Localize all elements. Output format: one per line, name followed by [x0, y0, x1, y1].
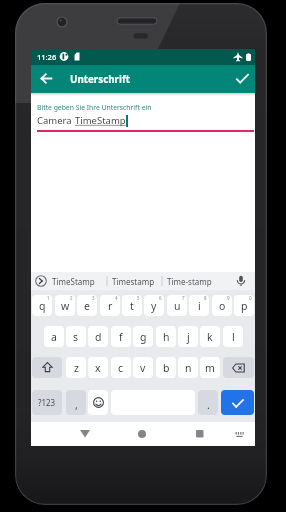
button[interactable]: c: [111, 357, 131, 378]
staticText: n: [185, 361, 192, 375]
staticText: 11:26: [37, 52, 57, 62]
staticText: z: [74, 361, 79, 375]
button[interactable]: o: [212, 295, 232, 316]
button[interactable]: j: [178, 326, 198, 347]
button[interactable]: g: [133, 326, 153, 347]
staticText: w: [61, 299, 70, 313]
staticText: 0: [249, 295, 252, 301]
staticText: c: [118, 361, 124, 375]
staticText: m: [205, 361, 215, 375]
button[interactable]: .: [198, 390, 218, 415]
button[interactable]: d: [88, 326, 108, 347]
staticText: s: [73, 330, 79, 344]
button[interactable]: [223, 357, 254, 378]
button[interactable]: q: [32, 295, 52, 316]
button[interactable]: [88, 390, 108, 415]
staticText: j: [187, 330, 190, 344]
staticText: Camera: [37, 114, 75, 127]
button[interactable]: [35, 67, 58, 90]
button[interactable]: v: [133, 357, 153, 378]
button[interactable]: TimeStamp: [49, 272, 107, 290]
staticText: t: [130, 299, 134, 313]
staticText: 6: [159, 295, 162, 301]
staticText: 4: [115, 295, 118, 301]
staticText: a: [51, 330, 57, 344]
staticText: Unterschrift: [70, 73, 130, 86]
staticText: g: [140, 330, 147, 344]
button[interactable]: ,: [66, 390, 86, 415]
staticText: r: [108, 299, 113, 313]
staticText: 5: [137, 295, 140, 301]
button[interactable]: s: [66, 326, 86, 347]
button[interactable]: [75, 424, 95, 444]
staticText: p: [241, 299, 248, 313]
staticText: 1: [47, 295, 50, 301]
button[interactable]: [230, 424, 249, 444]
button[interactable]: ?123: [32, 390, 62, 415]
button[interactable]: b: [156, 357, 176, 378]
staticText: ,: [75, 398, 78, 412]
staticText: y: [151, 299, 157, 313]
button[interactable]: e: [77, 295, 97, 316]
button[interactable]: [231, 67, 254, 90]
staticText: d: [95, 330, 102, 344]
staticText: h: [163, 330, 170, 344]
button[interactable]: [221, 390, 254, 415]
button[interactable]: h: [156, 326, 176, 347]
button[interactable]: Time-stamp: [164, 272, 221, 290]
staticText: TimeStamp: [52, 276, 95, 287]
button[interactable]: Camera: [37, 114, 128, 127]
staticText: TimeStamp: [75, 114, 126, 127]
button[interactable]: Timestamp: [109, 272, 162, 290]
staticText: o: [219, 299, 226, 313]
button[interactable]: x: [88, 357, 108, 378]
staticText: e: [84, 299, 90, 313]
staticText: x: [95, 361, 101, 375]
staticText: 3: [92, 295, 95, 301]
staticText: .: [207, 398, 210, 412]
button[interactable]: [190, 424, 210, 444]
button[interactable]: y: [144, 295, 164, 316]
staticText: Time-stamp: [167, 276, 212, 287]
button[interactable]: [32, 357, 62, 378]
staticText: 9: [227, 295, 230, 301]
button[interactable]: a: [44, 326, 64, 347]
staticText: Timestamp: [112, 276, 155, 287]
button[interactable]: k: [200, 326, 220, 347]
staticText: v: [140, 361, 146, 375]
button[interactable]: m: [200, 357, 220, 378]
staticText: q: [39, 299, 46, 313]
staticText: l: [232, 330, 235, 344]
button[interactable]: p: [234, 295, 254, 316]
staticText: ?123: [38, 397, 56, 408]
staticText: b: [163, 361, 170, 375]
staticText: 2: [70, 295, 73, 301]
button[interactable]: z: [66, 357, 86, 378]
staticText: k: [207, 330, 213, 344]
staticText: f: [119, 330, 123, 344]
button[interactable]: f: [111, 326, 131, 347]
staticText: i: [198, 299, 201, 313]
button[interactable]: i: [189, 295, 209, 316]
staticText: 7: [182, 295, 185, 301]
button[interactable]: n: [178, 357, 198, 378]
button[interactable]: l: [223, 326, 243, 347]
button[interactable]: u: [167, 295, 187, 316]
button[interactable]: t: [122, 295, 142, 316]
staticText: 8: [204, 295, 207, 301]
button[interactable]: [132, 424, 152, 444]
button[interactable]: r: [100, 295, 120, 316]
staticText: u: [174, 299, 181, 313]
staticText: Bitte geben Sie Ihre Unterschrift ein: [37, 103, 152, 112]
button[interactable]: w: [55, 295, 75, 316]
